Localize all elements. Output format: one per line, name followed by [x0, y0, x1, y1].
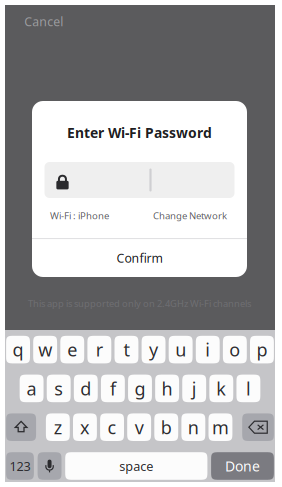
- button[interactable]: 123: [6, 452, 34, 480]
- staticText: y: [149, 337, 158, 362]
- staticText: e: [67, 337, 77, 362]
- button[interactable]: h: [155, 375, 179, 402]
- button[interactable]: r: [87, 336, 111, 363]
- staticText: t: [123, 337, 129, 362]
- button[interactable]: j: [182, 375, 206, 402]
- button[interactable]: Confirm: [32, 239, 247, 277]
- staticText: r: [96, 337, 103, 362]
- button[interactable]: i: [196, 336, 220, 363]
- button[interactable]: space: [65, 452, 207, 480]
- button[interactable]: Delete: [242, 413, 274, 441]
- staticText: a: [27, 376, 37, 401]
- button[interactable]: Done: [211, 452, 274, 480]
- staticText: 123: [9, 457, 30, 475]
- button[interactable]: y: [142, 336, 165, 363]
- staticText: b: [161, 415, 172, 439]
- staticText: z: [54, 415, 62, 439]
- button[interactable]: o: [223, 336, 247, 363]
- button[interactable]: Dictation: [38, 452, 61, 480]
- button[interactable]: e: [60, 336, 84, 363]
- staticText: g: [134, 376, 145, 401]
- button[interactable]: v: [127, 413, 151, 441]
- button[interactable]: a: [20, 375, 43, 402]
- button[interactable]: d: [74, 375, 98, 402]
- staticText: h: [162, 376, 173, 401]
- staticText: k: [216, 376, 226, 401]
- button[interactable]: n: [181, 413, 205, 441]
- staticText: o: [229, 337, 240, 362]
- staticText: Enter Wi-Fi Password: [67, 123, 212, 142]
- staticText: x: [80, 415, 90, 439]
- staticText: This app is supported only on 2.4GHz Wi-…: [28, 297, 251, 310]
- staticText: Change Network: [153, 209, 227, 222]
- staticText: j: [192, 376, 197, 401]
- staticText: i: [205, 337, 210, 362]
- button[interactable]: Change Network: [153, 209, 227, 222]
- staticText: space: [119, 457, 153, 475]
- button[interactable]: p: [250, 336, 274, 363]
- button[interactable]: c: [100, 413, 124, 441]
- button[interactable]: Shift: [6, 413, 36, 441]
- button[interactable]: s: [47, 375, 71, 402]
- button[interactable]: b: [154, 413, 178, 441]
- staticText: m: [212, 415, 229, 439]
- staticText: p: [256, 337, 267, 362]
- staticText: s: [54, 376, 63, 401]
- staticText: v: [135, 415, 144, 439]
- staticText: Wi-Fi : iPhone: [50, 209, 109, 222]
- button[interactable]: g: [128, 375, 152, 402]
- button[interactable]: k: [209, 375, 233, 402]
- button[interactable]: f: [101, 375, 125, 402]
- button[interactable]: q: [6, 336, 30, 363]
- staticText: Confirm: [116, 250, 162, 266]
- button[interactable]: x: [73, 413, 97, 441]
- staticText: w: [38, 337, 52, 362]
- button[interactable]: z: [46, 413, 70, 441]
- staticText: c: [107, 415, 116, 439]
- button[interactable]: m: [208, 413, 232, 441]
- staticText: u: [175, 337, 186, 362]
- button[interactable]: l: [236, 375, 260, 402]
- button[interactable]: u: [169, 336, 193, 363]
- button[interactable]: Cancel: [24, 15, 66, 29]
- staticText: Cancel: [24, 13, 63, 30]
- staticText: d: [80, 376, 91, 401]
- staticText: q: [12, 337, 23, 362]
- staticText: l: [246, 376, 251, 401]
- staticText: n: [188, 415, 199, 439]
- button[interactable]: t: [114, 336, 138, 363]
- staticText: f: [110, 376, 116, 401]
- staticText: Done: [225, 456, 260, 476]
- button[interactable]: w: [33, 336, 57, 363]
